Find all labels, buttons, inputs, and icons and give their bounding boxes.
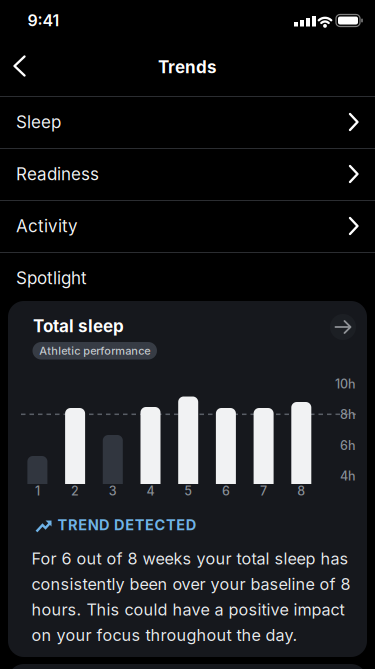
staticText: Total sleep <box>33 316 124 336</box>
staticText: Sleep <box>16 112 61 132</box>
staticText: TREND DETECTED <box>57 516 197 534</box>
staticText: 10h <box>335 376 356 391</box>
staticText: 6h <box>340 438 356 453</box>
staticText: 4h <box>340 468 356 483</box>
button[interactable]: Total sleep <box>8 301 367 657</box>
staticText: 9:41 <box>27 11 59 30</box>
button[interactable]: Spotlight <box>0 252 375 304</box>
button[interactable]: Sleep <box>0 96 375 148</box>
staticText: Activity <box>16 216 78 236</box>
staticText: 8 <box>297 483 305 498</box>
staticText: Trends <box>158 57 217 77</box>
staticText: consistently been over your baseline of … <box>31 574 350 594</box>
staticText: 7 <box>260 483 267 498</box>
button[interactable]: Readiness <box>0 148 375 200</box>
staticText: on your focus throughout the day. <box>31 625 297 645</box>
staticText: 3 <box>109 483 117 498</box>
staticText: Spotlight <box>16 268 87 288</box>
staticText: 1 <box>35 483 40 498</box>
staticText: 8h <box>340 407 356 422</box>
staticText: 2 <box>71 483 79 498</box>
staticText: 5 <box>184 483 192 498</box>
button[interactable]: Activity <box>0 200 375 252</box>
staticText: 6 <box>222 483 230 498</box>
staticText: For 6 out of 8 weeks your total sleep ha… <box>31 549 348 568</box>
staticText: hours. This could have a positive impact <box>31 600 344 619</box>
staticText: Readiness <box>16 164 99 184</box>
button[interactable] <box>8 664 367 669</box>
button[interactable] <box>0 44 44 88</box>
staticText: 4 <box>146 483 154 498</box>
staticText: Athletic performance <box>39 344 150 357</box>
